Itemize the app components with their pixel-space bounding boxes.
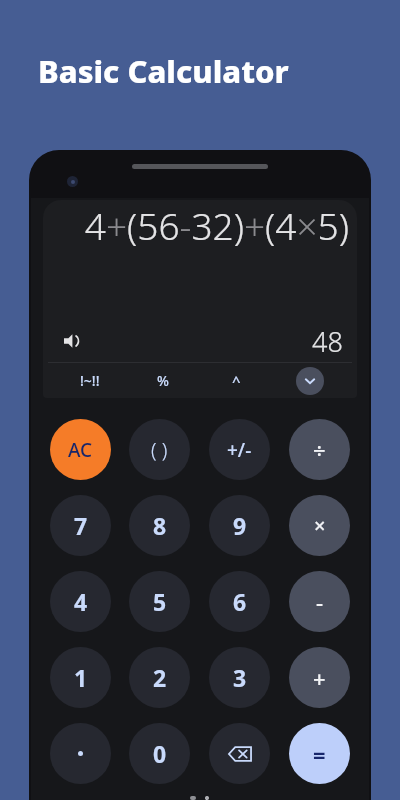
button[interactable]: 5 [129, 571, 190, 632]
button[interactable]: 9 [209, 495, 270, 556]
staticText: AC [68, 437, 93, 463]
button[interactable]: Expand [296, 367, 324, 395]
staticText: 48 [312, 323, 343, 360]
button[interactable]: - [289, 571, 350, 632]
button[interactable]: ÷ [289, 419, 350, 480]
button[interactable]: 0 [129, 723, 190, 784]
button[interactable]: !~!! [53, 363, 126, 398]
button[interactable]: ^ [199, 363, 273, 398]
button[interactable]: Speak result [57, 326, 87, 356]
staticText: 3 [233, 662, 247, 693]
staticText: 4+(56-32)+(4×5) [51, 200, 349, 250]
staticText: 7 [74, 510, 88, 541]
button[interactable]: ( ) [129, 419, 190, 480]
button[interactable]: 8 [129, 495, 190, 556]
staticText: +/- [227, 437, 252, 463]
staticText: = [313, 739, 326, 769]
staticText: ^ [232, 371, 241, 391]
staticText: 0 [153, 738, 167, 769]
staticText: 4 [74, 586, 88, 617]
staticText: 5 [153, 586, 167, 617]
staticText: - [316, 587, 324, 617]
staticText: ÷ [313, 435, 326, 465]
staticText: 8 [153, 510, 167, 541]
button[interactable]: 7 [50, 495, 111, 556]
button[interactable]: 6 [209, 571, 270, 632]
button[interactable]: + [289, 647, 350, 708]
staticText: + [313, 663, 326, 693]
staticText: Basic Calculator [38, 50, 289, 92]
staticText: 9 [233, 510, 247, 541]
staticText: % [157, 371, 169, 390]
button[interactable]: % [126, 363, 199, 398]
button[interactable]: Backspace [209, 723, 270, 784]
button[interactable]: 4 [50, 571, 111, 632]
button[interactable]: × [289, 495, 350, 556]
staticText: !~!! [80, 371, 100, 390]
button[interactable]: +/- [209, 419, 270, 480]
staticText: × [314, 512, 326, 539]
button[interactable]: = [289, 723, 350, 784]
button[interactable]: 1 [50, 647, 111, 708]
button[interactable]: AC [50, 419, 111, 480]
button[interactable]: 3 [209, 647, 270, 708]
staticText: 1 [74, 662, 88, 693]
staticText: ( ) [151, 436, 168, 463]
button[interactable]: 2 [129, 647, 190, 708]
staticText: 6 [233, 586, 247, 617]
button[interactable] [50, 723, 111, 784]
staticText: 2 [153, 662, 167, 693]
